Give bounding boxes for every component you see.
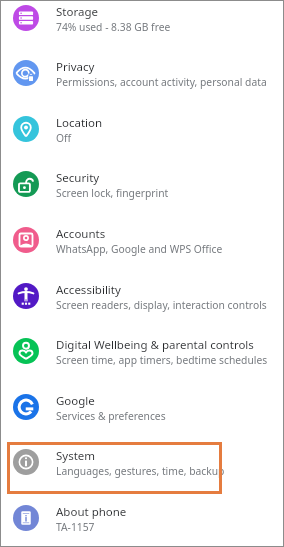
staticText: Google — [56, 393, 95, 409]
button[interactable]: Security — [0, 156, 284, 212]
staticText: WhatsApp, Google and WPS Office — [56, 242, 223, 256]
staticText: Languages, gestures, time, backup — [56, 464, 225, 478]
staticText: Location — [56, 115, 103, 131]
staticText: Storage — [56, 4, 98, 20]
staticText: Security — [56, 170, 100, 186]
staticText: 74% used - 8.38 GB free — [56, 20, 171, 34]
button[interactable]: Location — [0, 101, 284, 157]
button[interactable]: About phone — [0, 490, 284, 546]
staticText: Accounts — [56, 226, 106, 242]
staticText: System — [56, 448, 96, 464]
staticText: Off — [56, 131, 72, 145]
button[interactable]: Accounts — [0, 212, 284, 268]
button[interactable]: Digital Wellbeing & parental controls — [0, 323, 284, 379]
button[interactable]: Google — [0, 379, 284, 435]
button[interactable]: Privacy — [0, 45, 284, 101]
staticText: Accessibility — [56, 282, 121, 298]
staticText: Privacy — [56, 59, 95, 75]
staticText: Services & preferences — [56, 409, 166, 423]
button[interactable]: System — [0, 434, 284, 490]
button[interactable]: Storage — [0, 0, 284, 46]
staticText: About phone — [56, 504, 127, 520]
staticText: Screen time, app timers, bedtime schedul… — [56, 353, 268, 367]
staticText: Screen readers, display, interaction con… — [56, 298, 267, 312]
staticText: TA-1157 — [56, 520, 95, 534]
staticText: Permissions, account activity, personal … — [56, 75, 267, 89]
staticText: Screen lock, fingerprint — [56, 186, 169, 200]
staticText: Digital Wellbeing & parental controls — [56, 337, 254, 353]
button[interactable]: Accessibility — [0, 268, 284, 324]
